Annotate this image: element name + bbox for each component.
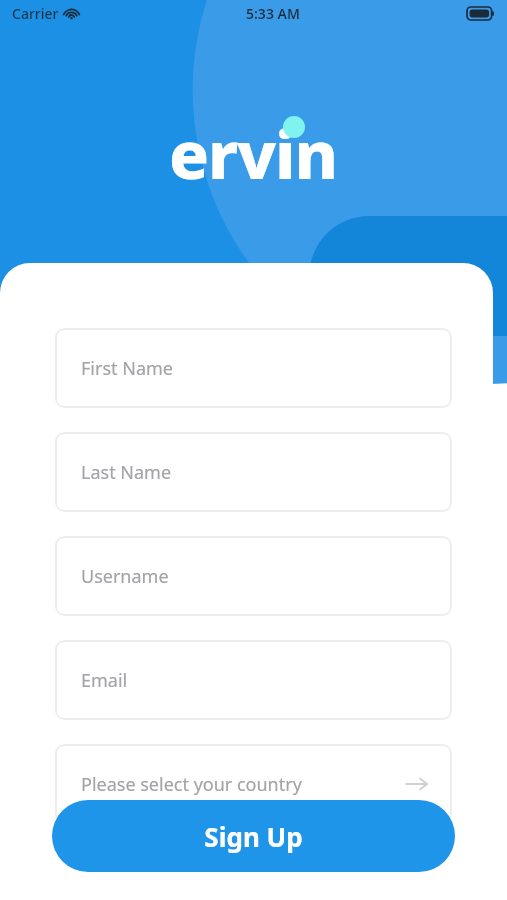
button[interactable]: First Name xyxy=(55,328,452,408)
staticText: ervin xyxy=(169,108,338,198)
staticText: Email xyxy=(81,668,128,693)
staticText: Sign Up xyxy=(204,819,303,854)
staticText: 5:33 AM xyxy=(246,4,300,23)
button[interactable]: Sign Up xyxy=(52,800,455,872)
button[interactable]: Please select your country xyxy=(55,744,452,824)
button[interactable]: Username xyxy=(55,536,452,616)
staticText: Last Name xyxy=(81,460,172,485)
button[interactable]: Email xyxy=(55,640,452,720)
staticText: Please select your country xyxy=(81,772,302,797)
staticText: Username xyxy=(81,564,169,589)
other: Select country xyxy=(404,771,430,797)
staticText: First Name xyxy=(81,356,173,381)
button[interactable]: Last Name xyxy=(55,432,452,512)
staticText: Carrier xyxy=(12,4,59,23)
